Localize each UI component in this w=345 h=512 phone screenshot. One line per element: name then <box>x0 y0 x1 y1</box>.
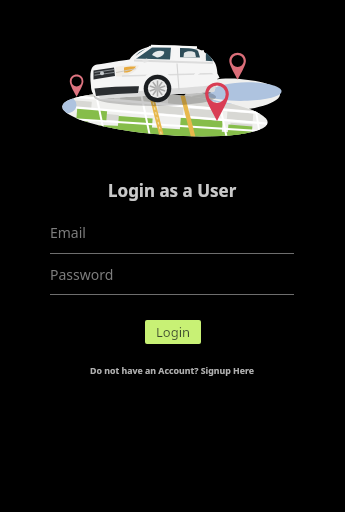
button[interactable]: Login <box>145 320 201 344</box>
staticText: Password <box>50 265 114 284</box>
button[interactable]: Password <box>50 265 294 284</box>
staticText: Email <box>50 223 86 242</box>
button[interactable]: Do not have an Account? Signup Here <box>86 363 259 379</box>
staticText: Login as a User <box>108 179 237 202</box>
staticText: Do not have an Account? Signup Here <box>90 365 255 377</box>
staticText: Login <box>156 323 191 341</box>
button[interactable]: Email <box>50 223 294 242</box>
